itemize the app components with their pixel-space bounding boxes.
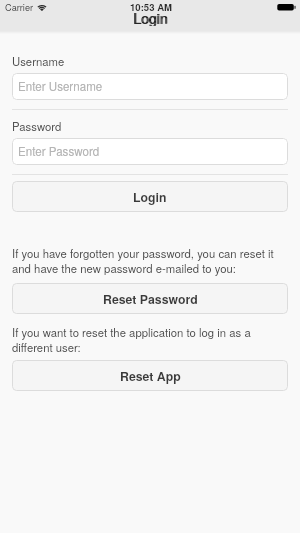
staticText: Password — [12, 118, 62, 134]
staticText: Login — [134, 8, 169, 26]
staticText: Enter Username — [18, 78, 103, 95]
staticText: Login — [133, 188, 167, 206]
button[interactable]: Reset App — [12, 360, 288, 391]
staticText: 10:53 AM — [130, 0, 173, 13]
button[interactable]: Enter Username — [12, 73, 288, 100]
button[interactable]: Enter Password — [12, 138, 288, 165]
other: Battery full — [277, 0, 300, 13]
button[interactable]: Login — [12, 181, 288, 212]
staticText: If you have forgotten your password, you… — [12, 245, 288, 276]
staticText: Username — [12, 53, 65, 69]
button[interactable]: Reset Password — [12, 283, 288, 314]
staticText: Reset Password — [103, 290, 198, 308]
staticText: Carrier — [5, 0, 34, 13]
staticText: If you want to reset the application to … — [12, 324, 288, 355]
staticText: Enter Password — [18, 143, 100, 160]
staticText: Reset App — [120, 367, 181, 385]
staticText: Login — [133, 8, 168, 26]
other: Wi-Fi signal — [38, 0, 46, 13]
